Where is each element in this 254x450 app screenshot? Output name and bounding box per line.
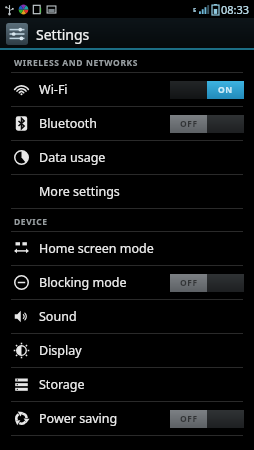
button[interactable]: Wi-Fi: [0, 73, 254, 106]
button[interactable]: More settings: [0, 175, 254, 208]
button[interactable]: Data usage: [0, 141, 254, 174]
staticText: Settings: [36, 25, 90, 44]
staticText: Power saving: [39, 410, 118, 427]
staticText: OFF: [180, 277, 198, 289]
staticText: 08:33: [221, 2, 250, 17]
button[interactable]: Toggle off: [170, 115, 244, 133]
staticText: E: [193, 6, 197, 14]
button[interactable]: Bluetooth: [0, 107, 254, 140]
staticText: WIRELESS AND NETWORKS: [14, 57, 139, 69]
staticText: OFF: [180, 118, 198, 130]
button[interactable]: Home screen mode: [0, 232, 254, 265]
button[interactable]: Toggle on: [170, 81, 244, 99]
button[interactable]: Storage: [0, 368, 254, 401]
staticText: Display: [39, 342, 82, 359]
button[interactable]: Display: [0, 334, 254, 367]
button[interactable]: Power saving: [0, 402, 254, 435]
button[interactable]: Sound: [0, 300, 254, 333]
staticText: Wi-Fi: [39, 81, 68, 98]
staticText: Storage: [39, 376, 85, 393]
staticText: Bluetooth: [39, 115, 98, 132]
staticText: OFF: [180, 413, 198, 425]
button[interactable]: Toggle off: [170, 274, 244, 292]
staticText: Sound: [39, 308, 77, 325]
staticText: Blocking mode: [39, 274, 127, 291]
staticText: Data usage: [39, 149, 106, 166]
staticText: DEVICE: [14, 216, 48, 228]
button[interactable]: Toggle off: [170, 410, 244, 428]
staticText: ON: [218, 84, 233, 96]
staticText: Home screen mode: [39, 240, 154, 257]
staticText: More settings: [39, 183, 120, 200]
button[interactable]: Blocking mode: [0, 266, 254, 299]
